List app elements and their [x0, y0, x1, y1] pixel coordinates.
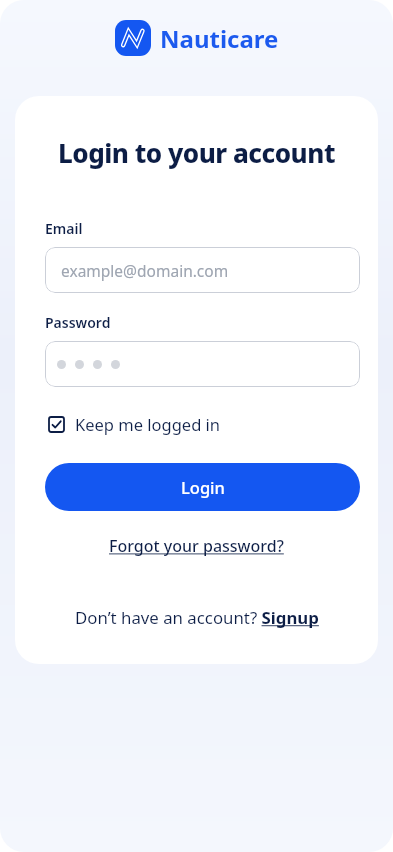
staticText: Login to your account — [15, 135, 378, 170]
button[interactable]: Keep me logged in — [48, 413, 221, 435]
button[interactable]: example@domain.com — [45, 247, 360, 293]
button[interactable]: Don’t have an account? Signup — [75, 606, 319, 629]
staticText: Password — [45, 313, 111, 332]
staticText: Keep me logged in — [75, 413, 221, 435]
staticText: Login — [181, 476, 225, 498]
staticText: Nauticare — [160, 22, 279, 55]
staticText: example@domain.com — [61, 260, 229, 281]
button[interactable]: Forgot your password? — [109, 535, 284, 557]
button[interactable] — [45, 341, 360, 387]
staticText: Email — [45, 219, 83, 238]
button[interactable]: Login — [45, 463, 360, 511]
